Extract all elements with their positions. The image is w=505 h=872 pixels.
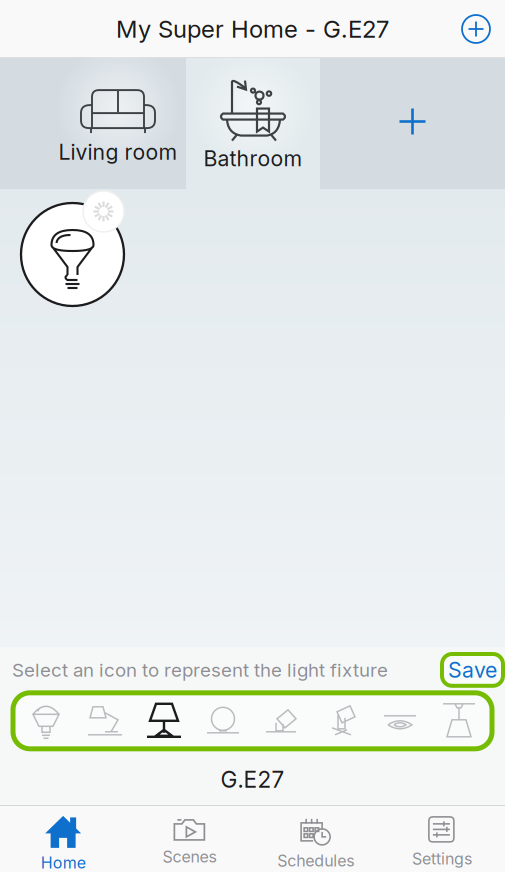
- button[interactable]: Add room: [320, 58, 505, 189]
- button[interactable]: Scenes: [126, 806, 252, 872]
- button[interactable]: Bulb: [16, 697, 75, 745]
- button[interactable]: Bathroom: [186, 58, 320, 189]
- button[interactable]: Living room: [0, 58, 186, 189]
- button[interactable]: Pendant light: [429, 697, 488, 745]
- staticText: Select an icon to represent the light fi…: [12, 659, 388, 681]
- button[interactable]: Ceiling light: [370, 697, 429, 745]
- button[interactable]: Settings: [379, 806, 505, 872]
- button[interactable]: Desk lamp: [75, 697, 134, 745]
- button[interactable]: Ring lamp: [193, 697, 252, 745]
- staticText: My Super Home - G.E27: [116, 14, 389, 43]
- staticText: G.E27: [220, 766, 284, 793]
- button[interactable]: Table lamp: [134, 697, 193, 745]
- button[interactable]: Save: [442, 654, 503, 686]
- staticText: Home: [41, 853, 86, 872]
- staticText: Schedules: [277, 851, 354, 870]
- staticText: Save: [448, 657, 497, 683]
- button[interactable]: Home: [0, 806, 126, 872]
- button[interactable]: Add: [447, 0, 505, 58]
- button[interactable]: G.E27 light: [21, 191, 139, 309]
- staticText: Living room: [58, 139, 177, 165]
- staticText: Scenes: [162, 847, 216, 866]
- button[interactable]: Schedules: [252, 806, 379, 872]
- button[interactable]: Wall spot light: [252, 697, 311, 745]
- staticText: Bathroom: [203, 146, 302, 171]
- staticText: Settings: [412, 849, 472, 868]
- button[interactable]: Floor spot light: [311, 697, 370, 745]
